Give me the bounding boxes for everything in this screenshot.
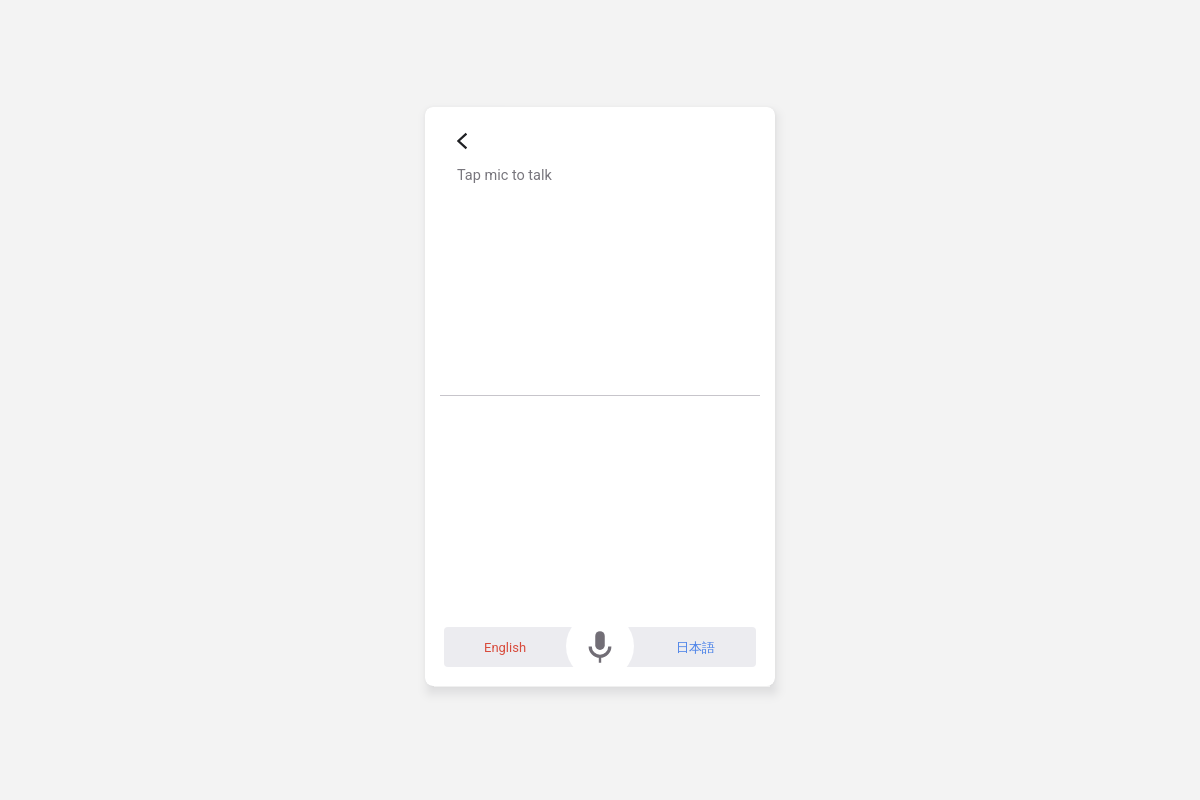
button[interactable]: Microphone [566,612,634,680]
button[interactable]: 日本語 [634,627,757,667]
button[interactable]: English [444,627,567,667]
staticText: 日本語 [676,639,715,655]
staticText: Tap mic to talk [457,167,552,184]
staticText: English [484,640,527,655]
button[interactable]: Back [441,124,475,158]
